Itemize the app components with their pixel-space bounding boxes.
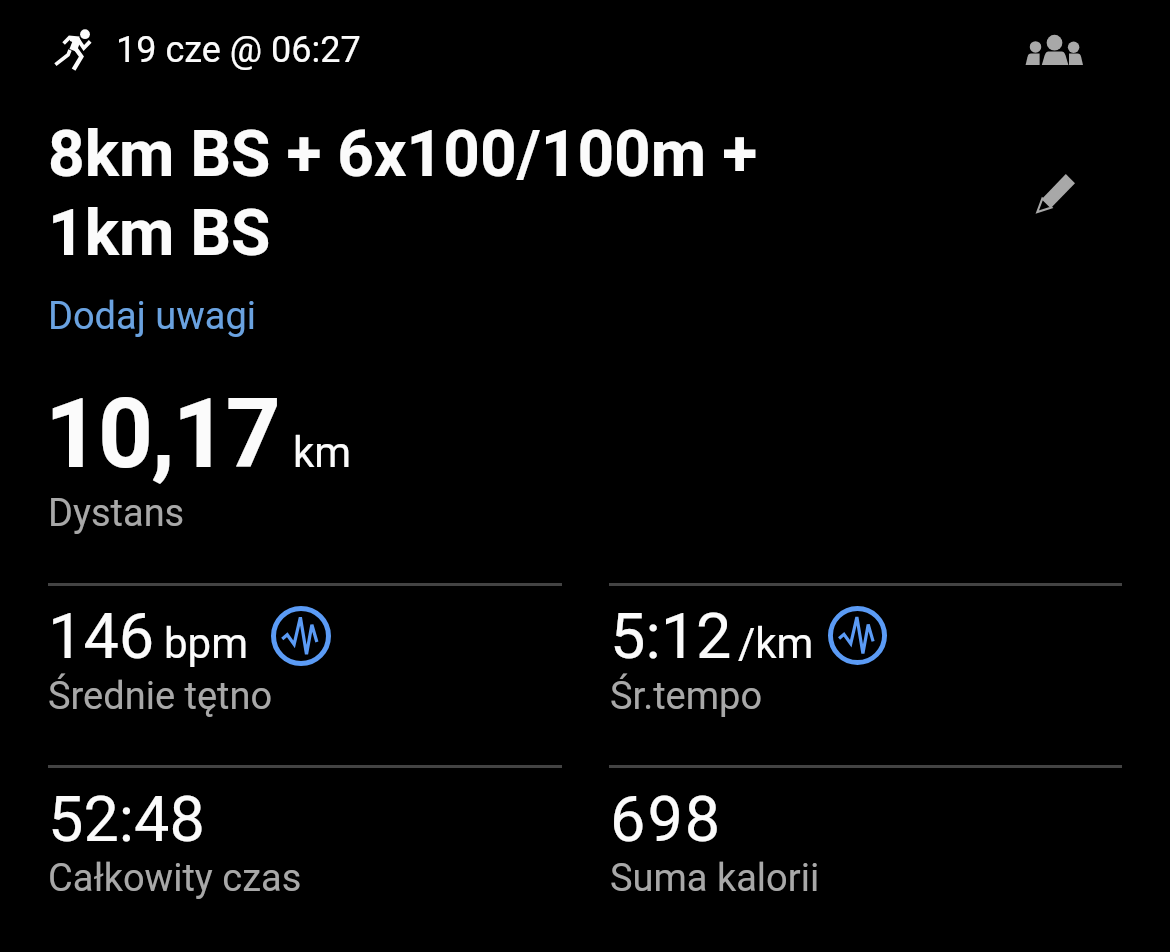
staticText: Śr.tempo [610, 674, 763, 719]
staticText: km [293, 428, 352, 477]
staticText: Dodaj uwagi [48, 294, 256, 339]
button[interactable]: 19 cze @ 06:27 [40, 14, 380, 86]
button[interactable]: 698 [609, 782, 1122, 912]
staticText: /km [738, 619, 814, 668]
staticText: Suma kalorii [610, 856, 820, 901]
staticText: 52:48 [48, 783, 205, 857]
button[interactable]: 146 [48, 600, 562, 730]
staticText: 8km BS + 6x100/100m + 1km BS [48, 117, 758, 263]
button[interactable]: 8km BS + 6x100/100m + 1km BS [44, 118, 974, 264]
button[interactable]: 10,17 [48, 380, 562, 540]
staticText: bpm [164, 619, 248, 668]
button[interactable]: 5:12 [609, 600, 1122, 730]
staticText: Całkowity czas [48, 856, 302, 901]
button[interactable]: 52:48 [48, 782, 562, 912]
staticText: 698 [610, 783, 723, 857]
staticText: 19 cze @ 06:27 [116, 29, 361, 71]
staticText: Dystans [48, 491, 185, 536]
staticText: 10,17 [45, 378, 279, 491]
button[interactable]: Dodaj uwagi [44, 292, 260, 340]
staticText: 146 [48, 600, 155, 674]
staticText: 5:12 [610, 600, 732, 674]
staticText: Średnie tętno [48, 674, 273, 719]
button[interactable]: Uczestnicy [1016, 20, 1092, 78]
button[interactable]: Edytuj [1018, 155, 1094, 231]
